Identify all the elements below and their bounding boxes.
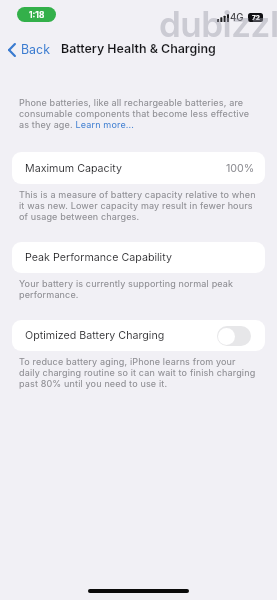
staticText: Maximum Capacity [25,162,122,175]
staticText: Back [21,42,50,57]
staticText: Peak Performance Capability [25,251,172,264]
button[interactable]: Optimized Battery Charging toggle [217,326,251,346]
staticText: dubizzle [159,3,277,45]
button[interactable]: Peak Performance Capability [12,242,265,273]
staticText: To reduce battery aging, iPhone learns f… [19,356,259,389]
button[interactable]: Back [4,39,56,60]
staticText: 4G [230,12,244,24]
staticText: 1:18 [29,10,45,20]
staticText: 100% [226,162,255,175]
staticText: Battery Health & Charging [61,41,216,56]
staticText: This is a measure of battery capacity re… [19,189,259,222]
button[interactable]: Maximum Capacity [12,152,265,184]
staticText: Optimized Battery Charging [25,329,165,342]
staticText: Your battery is currently supporting nor… [19,278,259,300]
staticText: 72 [252,14,260,22]
staticText: Phone batteries, like all rechargeable b… [19,97,259,130]
button[interactable]: Optimized Battery Charging [12,320,265,351]
